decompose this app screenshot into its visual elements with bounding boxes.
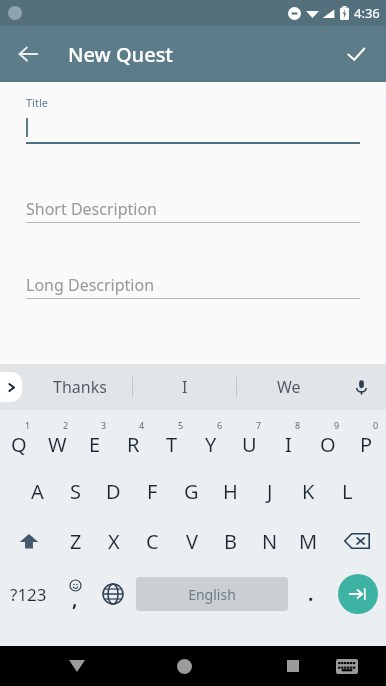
button[interactable]: E — [76, 416, 114, 466]
button[interactable]: C — [133, 516, 172, 566]
staticText: L — [342, 478, 353, 505]
staticText: ?123 — [10, 583, 47, 606]
button[interactable]: S — [56, 466, 94, 516]
button[interactable]: Save — [336, 34, 376, 74]
button[interactable] — [26, 110, 360, 142]
staticText: . — [308, 581, 314, 607]
button[interactable]: Back — [53, 646, 100, 686]
staticText: G — [184, 478, 199, 505]
staticText: 3 — [101, 419, 107, 431]
button[interactable]: P — [347, 416, 386, 466]
button[interactable]: Switch keyboard — [323, 646, 370, 686]
staticText: D — [106, 478, 121, 505]
button[interactable]: A — [18, 466, 56, 516]
staticText: 6 — [217, 419, 223, 431]
button[interactable]: R — [114, 416, 152, 466]
button[interactable]: X — [95, 516, 133, 566]
button[interactable]: I — [269, 416, 308, 466]
button[interactable]: Next field — [330, 566, 386, 622]
button[interactable]: T — [152, 416, 191, 466]
staticText: Z — [70, 528, 82, 555]
staticText: S — [70, 478, 81, 505]
staticText: K — [302, 478, 315, 505]
staticText: E — [89, 431, 101, 458]
staticText: Q — [11, 431, 27, 458]
staticText: New Quest — [68, 41, 174, 68]
staticText: 4:36 — [354, 4, 380, 22]
staticText: P — [360, 431, 373, 458]
staticText: W — [48, 431, 67, 458]
button[interactable]: L — [328, 466, 367, 516]
button[interactable]: . — [292, 566, 330, 622]
staticText: R — [127, 431, 140, 458]
staticText: O — [320, 431, 336, 458]
button[interactable]: Long Description — [26, 272, 360, 298]
staticText: Thanks — [53, 376, 107, 398]
staticText: Title — [26, 95, 48, 110]
button[interactable]: Shift — [0, 516, 57, 566]
staticText: Long Description — [26, 274, 155, 296]
staticText: 0 — [373, 419, 379, 431]
staticText: F — [147, 478, 158, 505]
button[interactable]: Z — [57, 516, 95, 566]
button[interactable]: K — [289, 466, 328, 516]
staticText: 5 — [178, 419, 184, 431]
staticText: Short Description — [26, 198, 157, 220]
button[interactable]: I — [133, 364, 236, 410]
staticText: B — [224, 528, 237, 555]
button[interactable]: D — [94, 466, 133, 516]
staticText: J — [267, 478, 273, 505]
button[interactable]: Expand suggestions — [0, 372, 22, 402]
staticText: A — [31, 478, 44, 505]
button[interactable]: Backspace — [328, 516, 386, 566]
button[interactable]: Back — [8, 34, 48, 74]
button[interactable]: Home — [161, 646, 208, 686]
button[interactable]: Change language — [94, 566, 132, 622]
staticText: 1 — [25, 419, 31, 431]
staticText: U — [242, 431, 257, 458]
staticText: 7 — [256, 419, 262, 431]
button[interactable]: O — [308, 416, 347, 466]
staticText: T — [166, 431, 178, 458]
button[interactable]: G — [172, 466, 211, 516]
button[interactable]: Voice input — [344, 370, 378, 404]
staticText: I — [182, 376, 188, 398]
button[interactable]: J — [250, 466, 289, 516]
button[interactable]: F — [133, 466, 172, 516]
staticText: N — [262, 528, 278, 555]
button[interactable]: English — [136, 577, 288, 611]
button[interactable]: H — [211, 466, 250, 516]
button[interactable]: N — [250, 516, 289, 566]
staticText: 8 — [295, 419, 301, 431]
button[interactable]: Emoji and comma — [56, 566, 94, 622]
button[interactable]: Short Description — [26, 196, 360, 222]
staticText: 2 — [63, 419, 69, 431]
staticText: C — [146, 528, 159, 555]
button[interactable]: Q — [0, 416, 38, 466]
button[interactable]: Thanks — [28, 364, 132, 410]
button[interactable]: U — [230, 416, 269, 466]
staticText: We — [277, 376, 301, 398]
button[interactable]: Recent apps — [269, 646, 316, 686]
staticText: X — [108, 528, 120, 555]
staticText: 4 — [139, 419, 145, 431]
button[interactable]: We — [237, 364, 340, 410]
staticText: M — [299, 528, 318, 555]
button[interactable]: ?123 — [0, 566, 56, 622]
staticText: H — [223, 478, 238, 505]
staticText: English — [188, 585, 236, 604]
button[interactable]: M — [289, 516, 328, 566]
staticText: , — [72, 586, 78, 612]
button[interactable]: Y — [191, 416, 230, 466]
button[interactable]: B — [211, 516, 250, 566]
staticText: 9 — [334, 419, 340, 431]
staticText: Y — [205, 431, 217, 458]
staticText: V — [186, 528, 198, 555]
staticText: I — [285, 431, 292, 458]
button[interactable]: W — [38, 416, 76, 466]
button[interactable]: V — [172, 516, 211, 566]
